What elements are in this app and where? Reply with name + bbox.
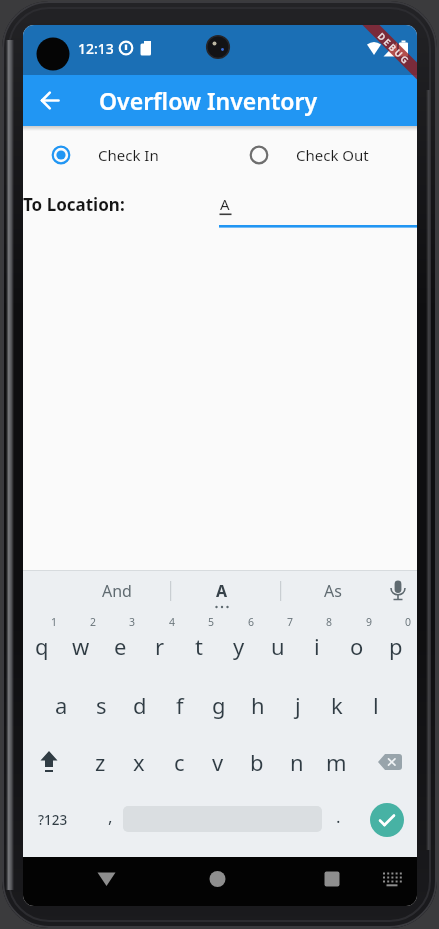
button[interactable]: p xyxy=(377,623,415,669)
button[interactable]: t xyxy=(180,623,218,669)
button[interactable]: And xyxy=(77,571,157,611)
button[interactable]: l xyxy=(357,680,395,730)
button[interactable]: d xyxy=(121,680,159,730)
button[interactable]: j xyxy=(279,680,317,730)
button[interactable]: x xyxy=(120,737,158,787)
staticText: h xyxy=(251,690,265,720)
staticText: , xyxy=(108,805,113,828)
staticText: v xyxy=(212,747,224,777)
button[interactable]: . xyxy=(323,792,353,840)
button[interactable] xyxy=(43,134,193,176)
staticText: 8 xyxy=(326,615,333,629)
staticText: 3 xyxy=(129,615,136,629)
staticText: ?123 xyxy=(38,811,68,829)
button[interactable]: z xyxy=(81,737,119,787)
staticText: 2 xyxy=(90,615,97,629)
staticText: Check In xyxy=(98,145,159,165)
staticText: Overflow Inventory xyxy=(99,85,318,116)
button[interactable]: v xyxy=(199,737,237,787)
button[interactable]: r xyxy=(141,623,179,669)
staticText: j xyxy=(295,690,301,720)
staticText: u xyxy=(271,631,285,661)
button[interactable] xyxy=(370,803,404,837)
staticText: To Location: xyxy=(23,193,125,216)
button[interactable] xyxy=(309,859,355,903)
staticText: y xyxy=(233,631,245,661)
button[interactable]: a xyxy=(42,680,80,730)
button[interactable]: f xyxy=(161,680,199,730)
staticText: c xyxy=(174,747,185,777)
staticText: A xyxy=(216,580,228,602)
staticText: l xyxy=(373,690,379,720)
staticText: 5 xyxy=(208,615,215,629)
button[interactable]: o xyxy=(338,623,376,669)
staticText: A xyxy=(220,194,230,214)
staticText: m xyxy=(326,747,347,777)
staticText: . xyxy=(336,805,341,828)
staticText: x xyxy=(133,747,145,777)
staticText: 9 xyxy=(366,615,373,629)
button[interactable]: ?123 xyxy=(27,796,79,844)
staticText: t xyxy=(195,631,203,661)
staticText: e xyxy=(114,631,127,661)
staticText: d xyxy=(133,690,147,720)
button[interactable]: i xyxy=(298,623,336,669)
staticText: r xyxy=(155,631,165,661)
button[interactable]: c xyxy=(160,737,198,787)
button[interactable]: u xyxy=(259,623,297,669)
button[interactable] xyxy=(31,81,69,119)
button[interactable] xyxy=(27,738,73,786)
staticText: DEBUG xyxy=(376,30,413,67)
button[interactable] xyxy=(83,859,129,903)
button[interactable] xyxy=(219,181,417,228)
button[interactable] xyxy=(367,738,413,786)
button[interactable]: k xyxy=(318,680,356,730)
staticText: 4 xyxy=(169,615,176,629)
staticText: a xyxy=(55,690,68,720)
button[interactable]: e xyxy=(101,623,139,669)
button[interactable]: n xyxy=(278,737,316,787)
staticText: i xyxy=(314,631,320,661)
staticText: As xyxy=(324,580,342,602)
button[interactable]: As xyxy=(293,571,373,611)
staticText: 6 xyxy=(248,615,255,629)
button[interactable] xyxy=(371,859,413,903)
staticText: z xyxy=(95,747,106,777)
staticText: f xyxy=(176,690,184,720)
button[interactable]: q xyxy=(23,623,61,669)
staticText: 0 xyxy=(405,615,412,629)
button[interactable]: h xyxy=(239,680,277,730)
staticText: 7 xyxy=(287,615,294,629)
staticText: 1 xyxy=(51,615,58,629)
staticText: Check Out xyxy=(296,145,369,165)
button[interactable]: w xyxy=(62,623,100,669)
staticText: o xyxy=(350,631,364,661)
button[interactable] xyxy=(195,859,241,903)
button[interactable] xyxy=(241,134,391,176)
staticText: And xyxy=(102,580,132,602)
button[interactable]: A xyxy=(182,571,262,611)
staticText: k xyxy=(331,690,343,720)
staticText: s xyxy=(96,690,107,720)
button[interactable]: , xyxy=(95,792,125,840)
button[interactable]: s xyxy=(82,680,120,730)
button[interactable]: b xyxy=(238,737,276,787)
staticText: g xyxy=(212,690,226,720)
button[interactable]: m xyxy=(317,737,355,787)
button[interactable]: y xyxy=(220,623,258,669)
staticText: n xyxy=(290,747,304,777)
staticText: w xyxy=(72,631,90,661)
staticText: b xyxy=(250,747,264,777)
staticText: q xyxy=(35,631,49,661)
staticText: 12:13 xyxy=(78,39,114,58)
staticText: p xyxy=(389,631,403,661)
button[interactable]: g xyxy=(200,680,238,730)
